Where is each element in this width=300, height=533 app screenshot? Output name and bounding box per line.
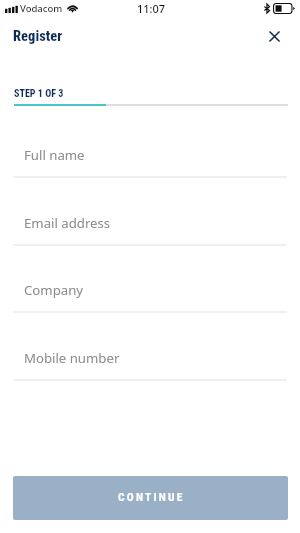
staticText: Vodacom — [20, 2, 63, 15]
staticText: STEP 1 OF 3 — [14, 88, 64, 100]
button[interactable]: Company — [13, 267, 287, 313]
staticText: CONTINUE — [118, 490, 185, 503]
staticText: Full name — [24, 146, 85, 164]
button[interactable]: Full name — [13, 132, 287, 178]
button[interactable]: Email address — [13, 200, 287, 246]
staticText: Register — [13, 28, 63, 45]
button[interactable]: Close — [259, 21, 289, 51]
staticText: Email address — [24, 214, 111, 232]
button[interactable]: CONTINUE — [13, 476, 288, 520]
staticText: Mobile number — [24, 349, 120, 367]
staticText: Company — [24, 281, 84, 299]
staticText: 11:07 — [137, 1, 166, 16]
button[interactable]: Mobile number — [13, 335, 287, 381]
